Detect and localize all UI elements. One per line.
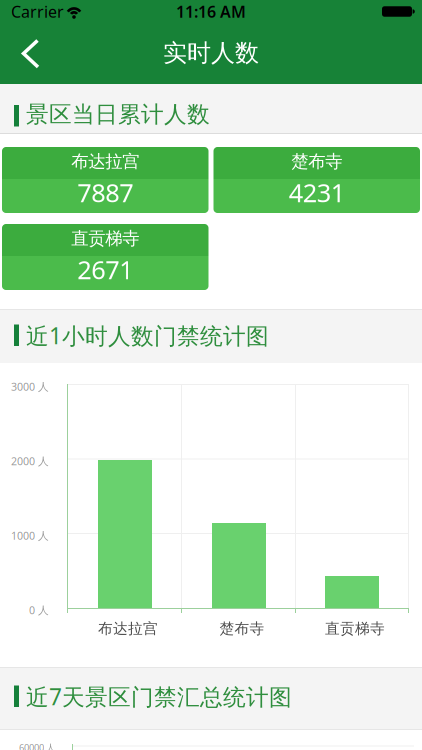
button[interactable]: [8, 31, 52, 75]
staticText: 2000 人: [11, 454, 49, 468]
button[interactable]: 楚布寺: [213, 147, 420, 213]
staticText: 景区当日累计人数: [26, 101, 210, 128]
button[interactable]: 布达拉宫: [2, 147, 208, 213]
staticText: 2671: [77, 253, 133, 286]
staticText: 1000 人: [11, 528, 49, 543]
staticText: 近1小时人数门禁统计图: [26, 320, 269, 350]
staticText: 楚布寺: [219, 619, 264, 637]
staticText: 直贡梯寺: [325, 619, 385, 637]
staticText: 直贡梯寺: [71, 228, 139, 249]
button[interactable]: 直贡梯寺: [2, 224, 208, 290]
staticText: 布达拉宫: [71, 151, 139, 172]
staticText: 60000 人: [19, 741, 55, 750]
staticText: 近7天景区门禁汇总统计图: [26, 681, 292, 711]
staticText: 楚布寺: [291, 151, 342, 172]
staticText: 布达拉宫: [98, 619, 158, 637]
staticText: 4231: [289, 176, 345, 209]
staticText: 实时人数: [163, 38, 259, 68]
staticText: 11:16 AM: [176, 1, 246, 22]
staticText: 0 人: [29, 603, 49, 617]
staticText: 3000 人: [11, 379, 49, 394]
staticText: Carrier: [11, 1, 64, 22]
staticText: 7887: [77, 176, 133, 209]
